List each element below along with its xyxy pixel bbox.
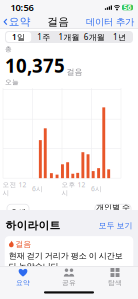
- staticText: 탐색: [108, 279, 122, 287]
- staticText: 오늘: [13, 273, 27, 282]
- staticText: 1개월: [58, 32, 79, 42]
- button[interactable]: 1일: [6, 32, 31, 42]
- button[interactable]: 추세: [7, 204, 29, 220]
- staticText: 총: [5, 45, 12, 53]
- staticText: 걸음: [66, 67, 82, 77]
- staticText: 요약: [9, 15, 31, 28]
- staticText: 6시: [32, 184, 43, 193]
- staticText: 걸음: [47, 15, 69, 28]
- staticText: 추세: [10, 207, 26, 217]
- button[interactable]: 걸음: [5, 236, 133, 285]
- button[interactable]: 모두 보기: [98, 221, 132, 230]
- staticText: 공유: [62, 279, 76, 287]
- staticText: 10,375: [5, 53, 65, 78]
- button[interactable]: 1주: [31, 32, 56, 42]
- staticText: 오늘: [5, 78, 19, 86]
- staticText: 현재 걷기 거리가 평소 이 시간보다 높았습니다.: [9, 251, 123, 271]
- button[interactable]: 개인별 수집함: [95, 204, 131, 220]
- staticText: 오전 12시: [2, 180, 26, 197]
- staticText: 1년: [113, 32, 126, 42]
- staticText: 10:56: [10, 1, 33, 14]
- staticText: 1주: [37, 32, 50, 42]
- button[interactable]: 공유: [46, 266, 92, 288]
- staticText: 1일: [12, 32, 25, 42]
- button[interactable]: 1년: [107, 32, 132, 42]
- staticText: 데이터 추가: [86, 16, 134, 28]
- button[interactable]: 데이터 추가: [86, 15, 138, 28]
- staticText: 요약: [16, 279, 30, 287]
- button[interactable]: 탐색: [92, 266, 138, 288]
- staticText: 개인별 수집함: [96, 202, 130, 222]
- staticText: 오후 12시: [61, 180, 85, 197]
- staticText: 56: [123, 3, 131, 12]
- button[interactable]: 6개월: [82, 32, 107, 42]
- button[interactable]: 1개월: [56, 32, 82, 42]
- staticText: 걸음: [15, 239, 31, 249]
- button[interactable]: 요약: [0, 266, 46, 288]
- button[interactable]: 요약: [0, 15, 31, 28]
- staticText: 6개월: [84, 32, 105, 42]
- staticText: 모두 보기: [98, 221, 132, 230]
- staticText: 6시: [91, 184, 102, 193]
- staticText: 하이라이트: [5, 219, 60, 232]
